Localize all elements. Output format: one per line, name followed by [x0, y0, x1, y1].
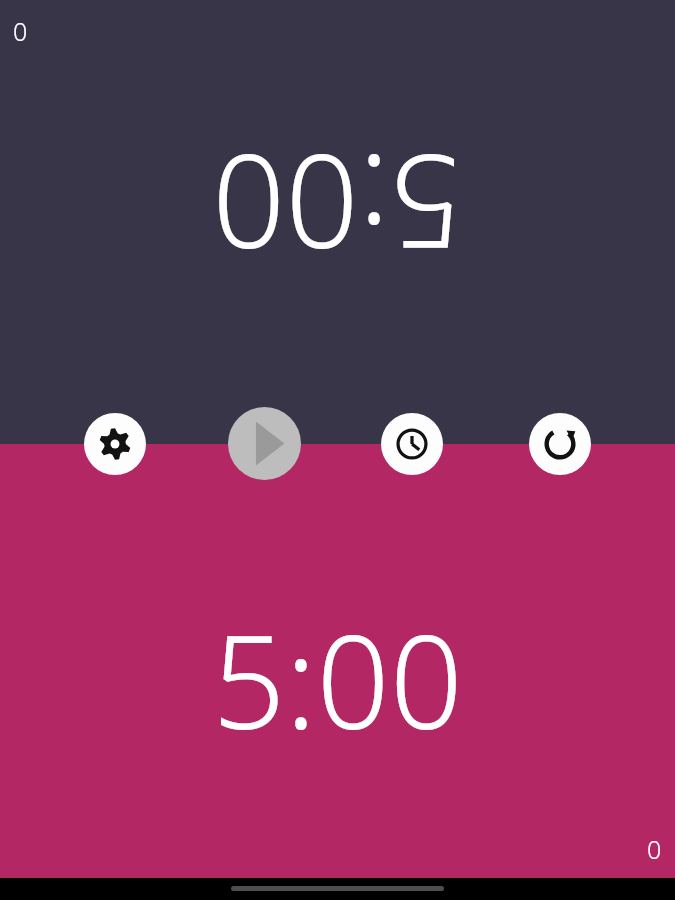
button[interactable]: Reset [529, 413, 591, 475]
button[interactable]: 0 [0, 0, 675, 444]
button[interactable]: Settings [84, 413, 146, 475]
staticText: 0 [647, 832, 662, 866]
button[interactable]: 5:00 [0, 444, 675, 880]
button[interactable]: Time settings [381, 413, 443, 475]
staticText: 0 [13, 14, 28, 48]
button[interactable]: Start [228, 407, 301, 480]
staticText: 5:00 [212, 118, 463, 292]
staticText: 5:00 [212, 592, 463, 766]
